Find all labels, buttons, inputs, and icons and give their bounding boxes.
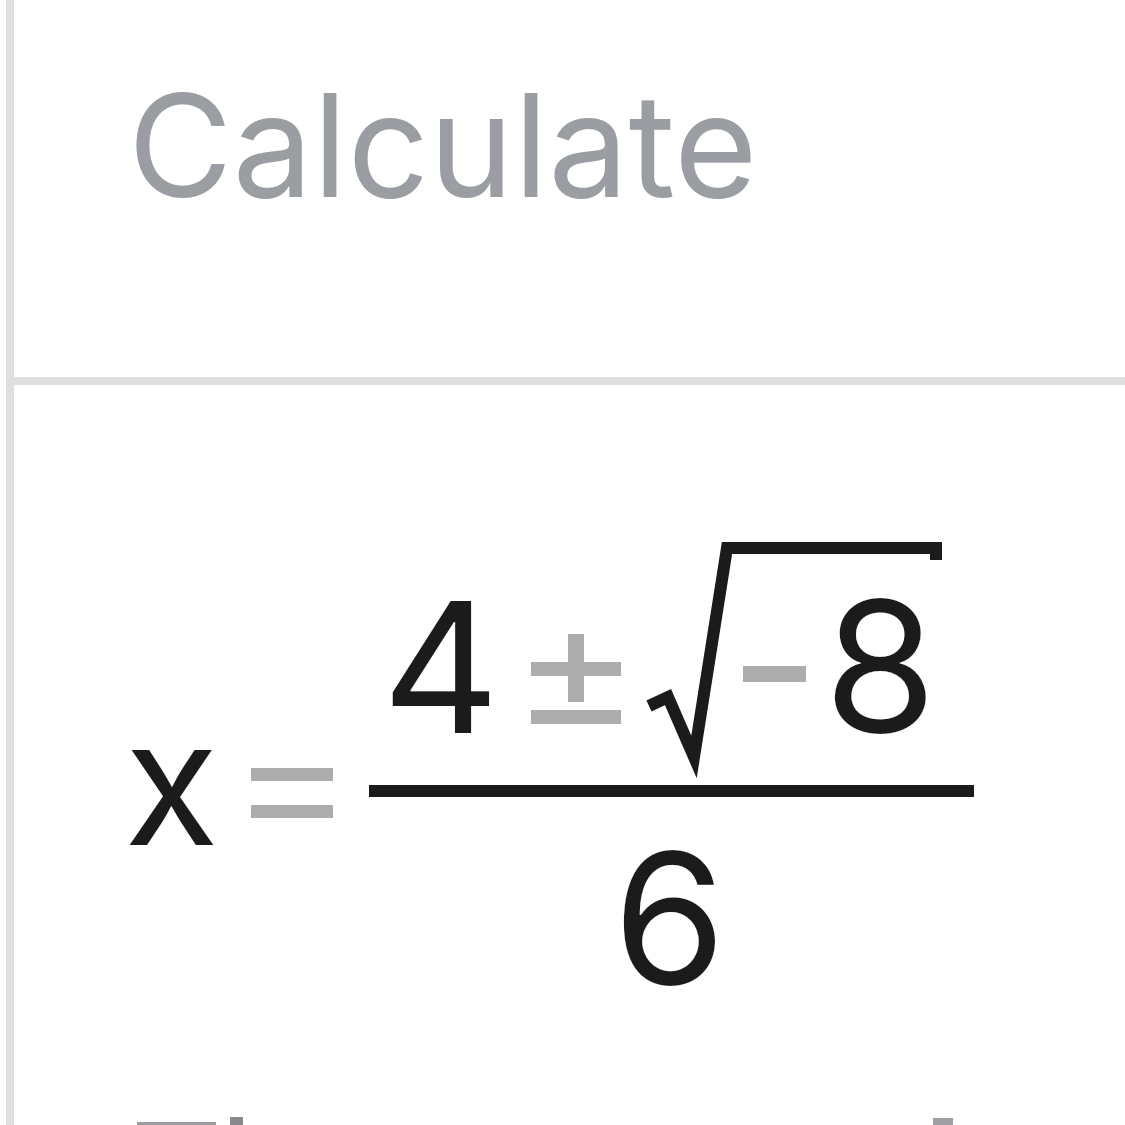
staticText: 6 (613, 808, 726, 1028)
button[interactable] (14, 0, 1125, 377)
staticText: Calculate (128, 58, 758, 231)
staticText: 4 (382, 557, 500, 777)
staticText: x (124, 676, 219, 887)
staticText: 8 (824, 556, 937, 776)
